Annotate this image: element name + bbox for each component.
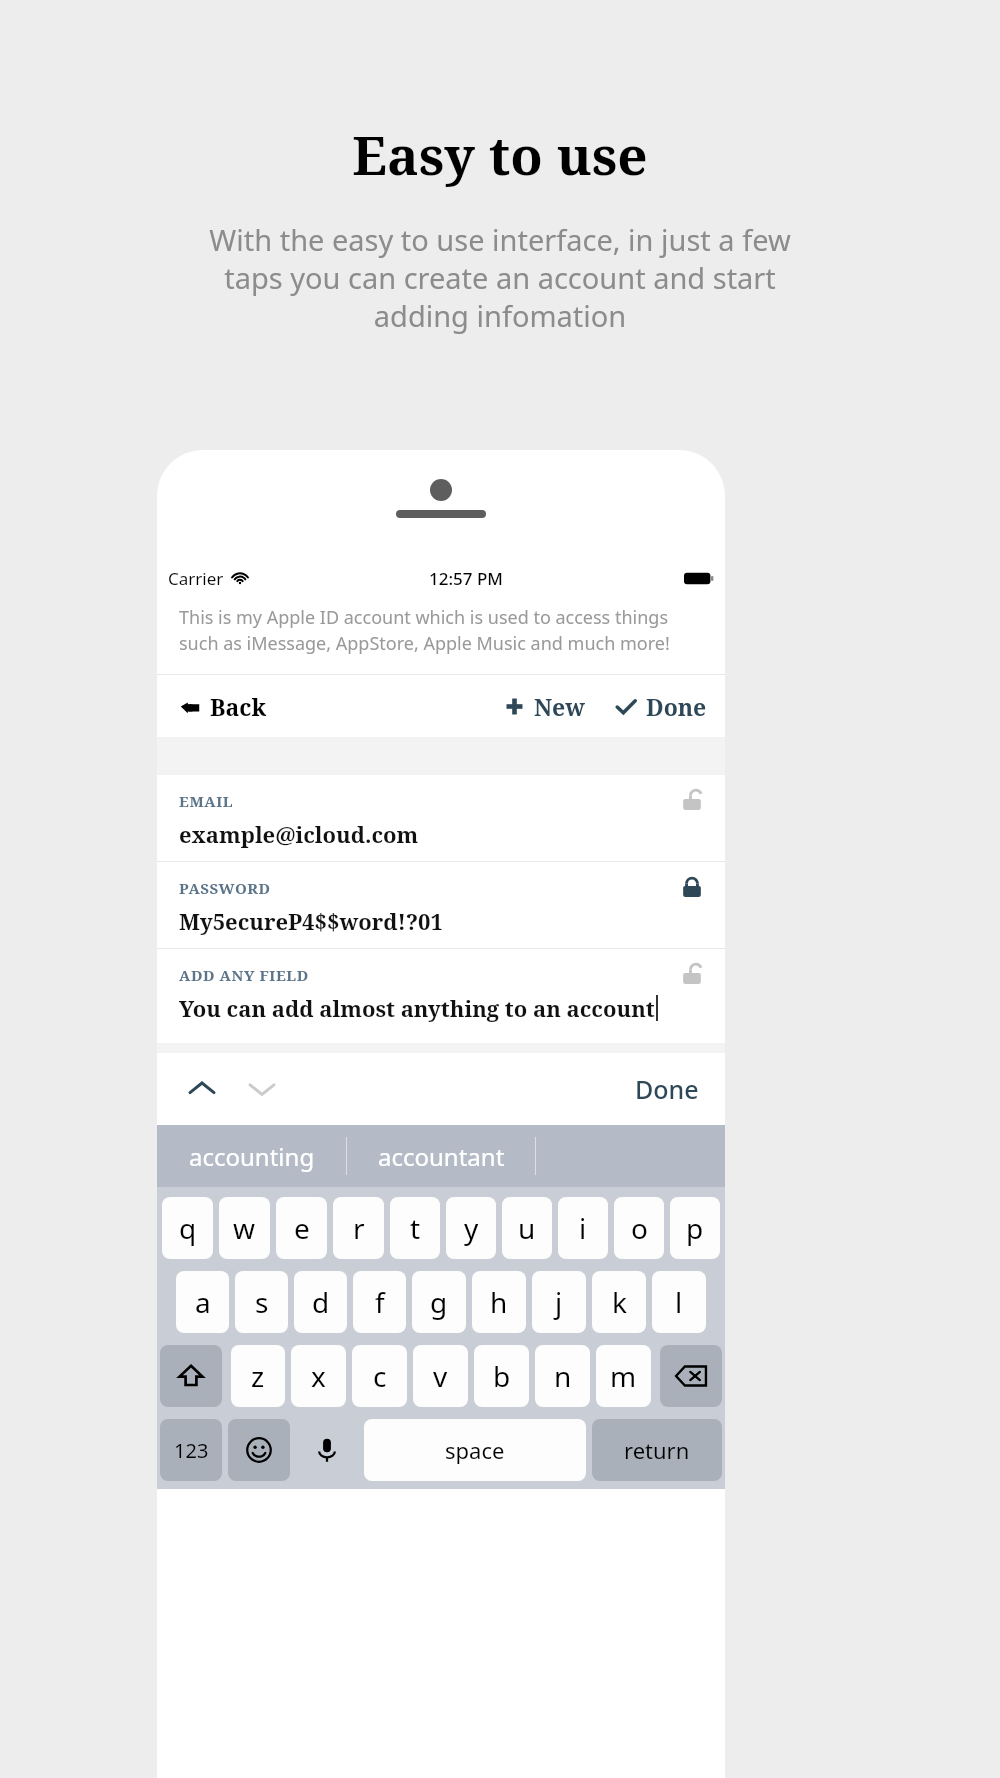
- other: Shift: [176, 1361, 206, 1391]
- staticText: e: [294, 1209, 310, 1247]
- button[interactable]: space: [364, 1419, 586, 1481]
- button[interactable]: Done: [609, 683, 725, 730]
- button[interactable]: Shift: [160, 1345, 222, 1407]
- staticText: My5ecureP4$$word!?01: [179, 906, 443, 936]
- button[interactable]: Backspace: [660, 1345, 722, 1407]
- button[interactable]: r: [333, 1197, 384, 1259]
- staticText: Easy to use: [352, 118, 648, 190]
- button[interactable]: return: [592, 1419, 722, 1481]
- staticText: PASSWORD: [179, 878, 271, 898]
- button[interactable]: New: [494, 683, 595, 730]
- staticText: This is my Apple ID account which is use…: [179, 605, 707, 656]
- staticText: space: [445, 1435, 505, 1465]
- button[interactable]: j: [532, 1271, 586, 1333]
- staticText: d: [312, 1283, 330, 1321]
- staticText: EMAIL: [179, 791, 234, 811]
- other: Dictation: [313, 1436, 341, 1464]
- button[interactable]: p: [670, 1197, 720, 1259]
- staticText: k: [612, 1283, 627, 1321]
- staticText: h: [490, 1283, 508, 1321]
- staticText: o: [631, 1209, 648, 1247]
- button[interactable]: e: [276, 1197, 327, 1259]
- button[interactable]: z: [231, 1345, 285, 1407]
- staticText: z: [251, 1357, 265, 1395]
- staticText: With the easy to use interface, in just …: [195, 220, 805, 335]
- staticText: Carrier: [168, 567, 224, 590]
- button[interactable]: Locked: [679, 874, 705, 900]
- other: Backspace: [674, 1359, 708, 1393]
- staticText: j: [555, 1283, 563, 1321]
- button[interactable]: x: [291, 1345, 346, 1407]
- button[interactable]: k: [592, 1271, 646, 1333]
- button[interactable]: Unlocked: [679, 787, 705, 813]
- button[interactable]: Back: [157, 683, 289, 730]
- staticText: w: [233, 1209, 256, 1247]
- button[interactable]: accounting: [157, 1125, 347, 1187]
- button[interactable]: u: [502, 1197, 552, 1259]
- staticText: Back: [210, 691, 267, 722]
- button[interactable]: PASSWORD: [157, 862, 725, 948]
- button[interactable]: g: [412, 1271, 466, 1333]
- staticText: i: [579, 1209, 587, 1247]
- button[interactable]: w: [219, 1197, 270, 1259]
- button[interactable]: q: [162, 1197, 213, 1259]
- button[interactable]: t: [390, 1197, 440, 1259]
- staticText: Done: [646, 691, 707, 722]
- staticText: f: [375, 1283, 385, 1321]
- staticText: ADD ANY FIELD: [179, 965, 309, 985]
- staticText: m: [610, 1357, 637, 1395]
- staticText: New: [534, 691, 585, 722]
- button[interactable]: n: [535, 1345, 590, 1407]
- other: Emoji: [245, 1436, 273, 1464]
- staticText: You can add almost anything to an accoun…: [179, 993, 655, 1023]
- staticText: a: [195, 1283, 211, 1321]
- button[interactable]: Dictation: [296, 1419, 358, 1481]
- button[interactable]: Done: [629, 1064, 705, 1114]
- staticText: Done: [635, 1072, 699, 1106]
- staticText: example@icloud.com: [179, 819, 419, 849]
- staticText: y: [464, 1209, 479, 1247]
- staticText: 123: [174, 1437, 209, 1464]
- staticText: p: [686, 1209, 704, 1247]
- button[interactable]: a: [176, 1271, 229, 1333]
- staticText: return: [624, 1435, 690, 1465]
- staticText: 12:57 PM: [429, 567, 503, 590]
- staticText: l: [675, 1283, 683, 1321]
- button[interactable]: m: [596, 1345, 651, 1407]
- button[interactable]: y: [446, 1197, 496, 1259]
- staticText: accounting: [189, 1140, 315, 1173]
- button[interactable]: i: [558, 1197, 608, 1259]
- staticText: v: [433, 1357, 448, 1395]
- button[interactable]: Emoji: [228, 1419, 290, 1481]
- staticText: g: [430, 1283, 448, 1321]
- button[interactable]: l: [652, 1271, 706, 1333]
- staticText: s: [255, 1283, 269, 1321]
- button[interactable]: ADD ANY FIELD: [157, 949, 725, 1035]
- other: Wi-Fi: [231, 569, 249, 587]
- button[interactable]: Previous field: [177, 1064, 227, 1114]
- staticText: r: [353, 1209, 365, 1247]
- button[interactable]: Next field: [237, 1064, 287, 1114]
- button[interactable]: EMAIL: [157, 775, 725, 861]
- staticText: n: [554, 1357, 572, 1395]
- staticText: t: [410, 1209, 421, 1247]
- button[interactable]: accountant: [347, 1125, 536, 1187]
- staticText: q: [179, 1209, 197, 1247]
- button[interactable]: 123: [160, 1419, 222, 1481]
- button[interactable]: h: [472, 1271, 526, 1333]
- button[interactable]: f: [353, 1271, 406, 1333]
- button[interactable]: b: [474, 1345, 529, 1407]
- button[interactable]: Unlocked: [679, 961, 705, 987]
- other: Battery: [684, 571, 714, 586]
- button[interactable]: d: [294, 1271, 347, 1333]
- staticText: b: [493, 1357, 511, 1395]
- staticText: x: [311, 1357, 326, 1395]
- button[interactable]: o: [614, 1197, 664, 1259]
- staticText: c: [373, 1357, 387, 1395]
- button[interactable]: c: [352, 1345, 407, 1407]
- staticText: u: [518, 1209, 536, 1247]
- button[interactable]: v: [413, 1345, 468, 1407]
- staticText: accountant: [378, 1140, 505, 1173]
- button[interactable]: s: [235, 1271, 288, 1333]
